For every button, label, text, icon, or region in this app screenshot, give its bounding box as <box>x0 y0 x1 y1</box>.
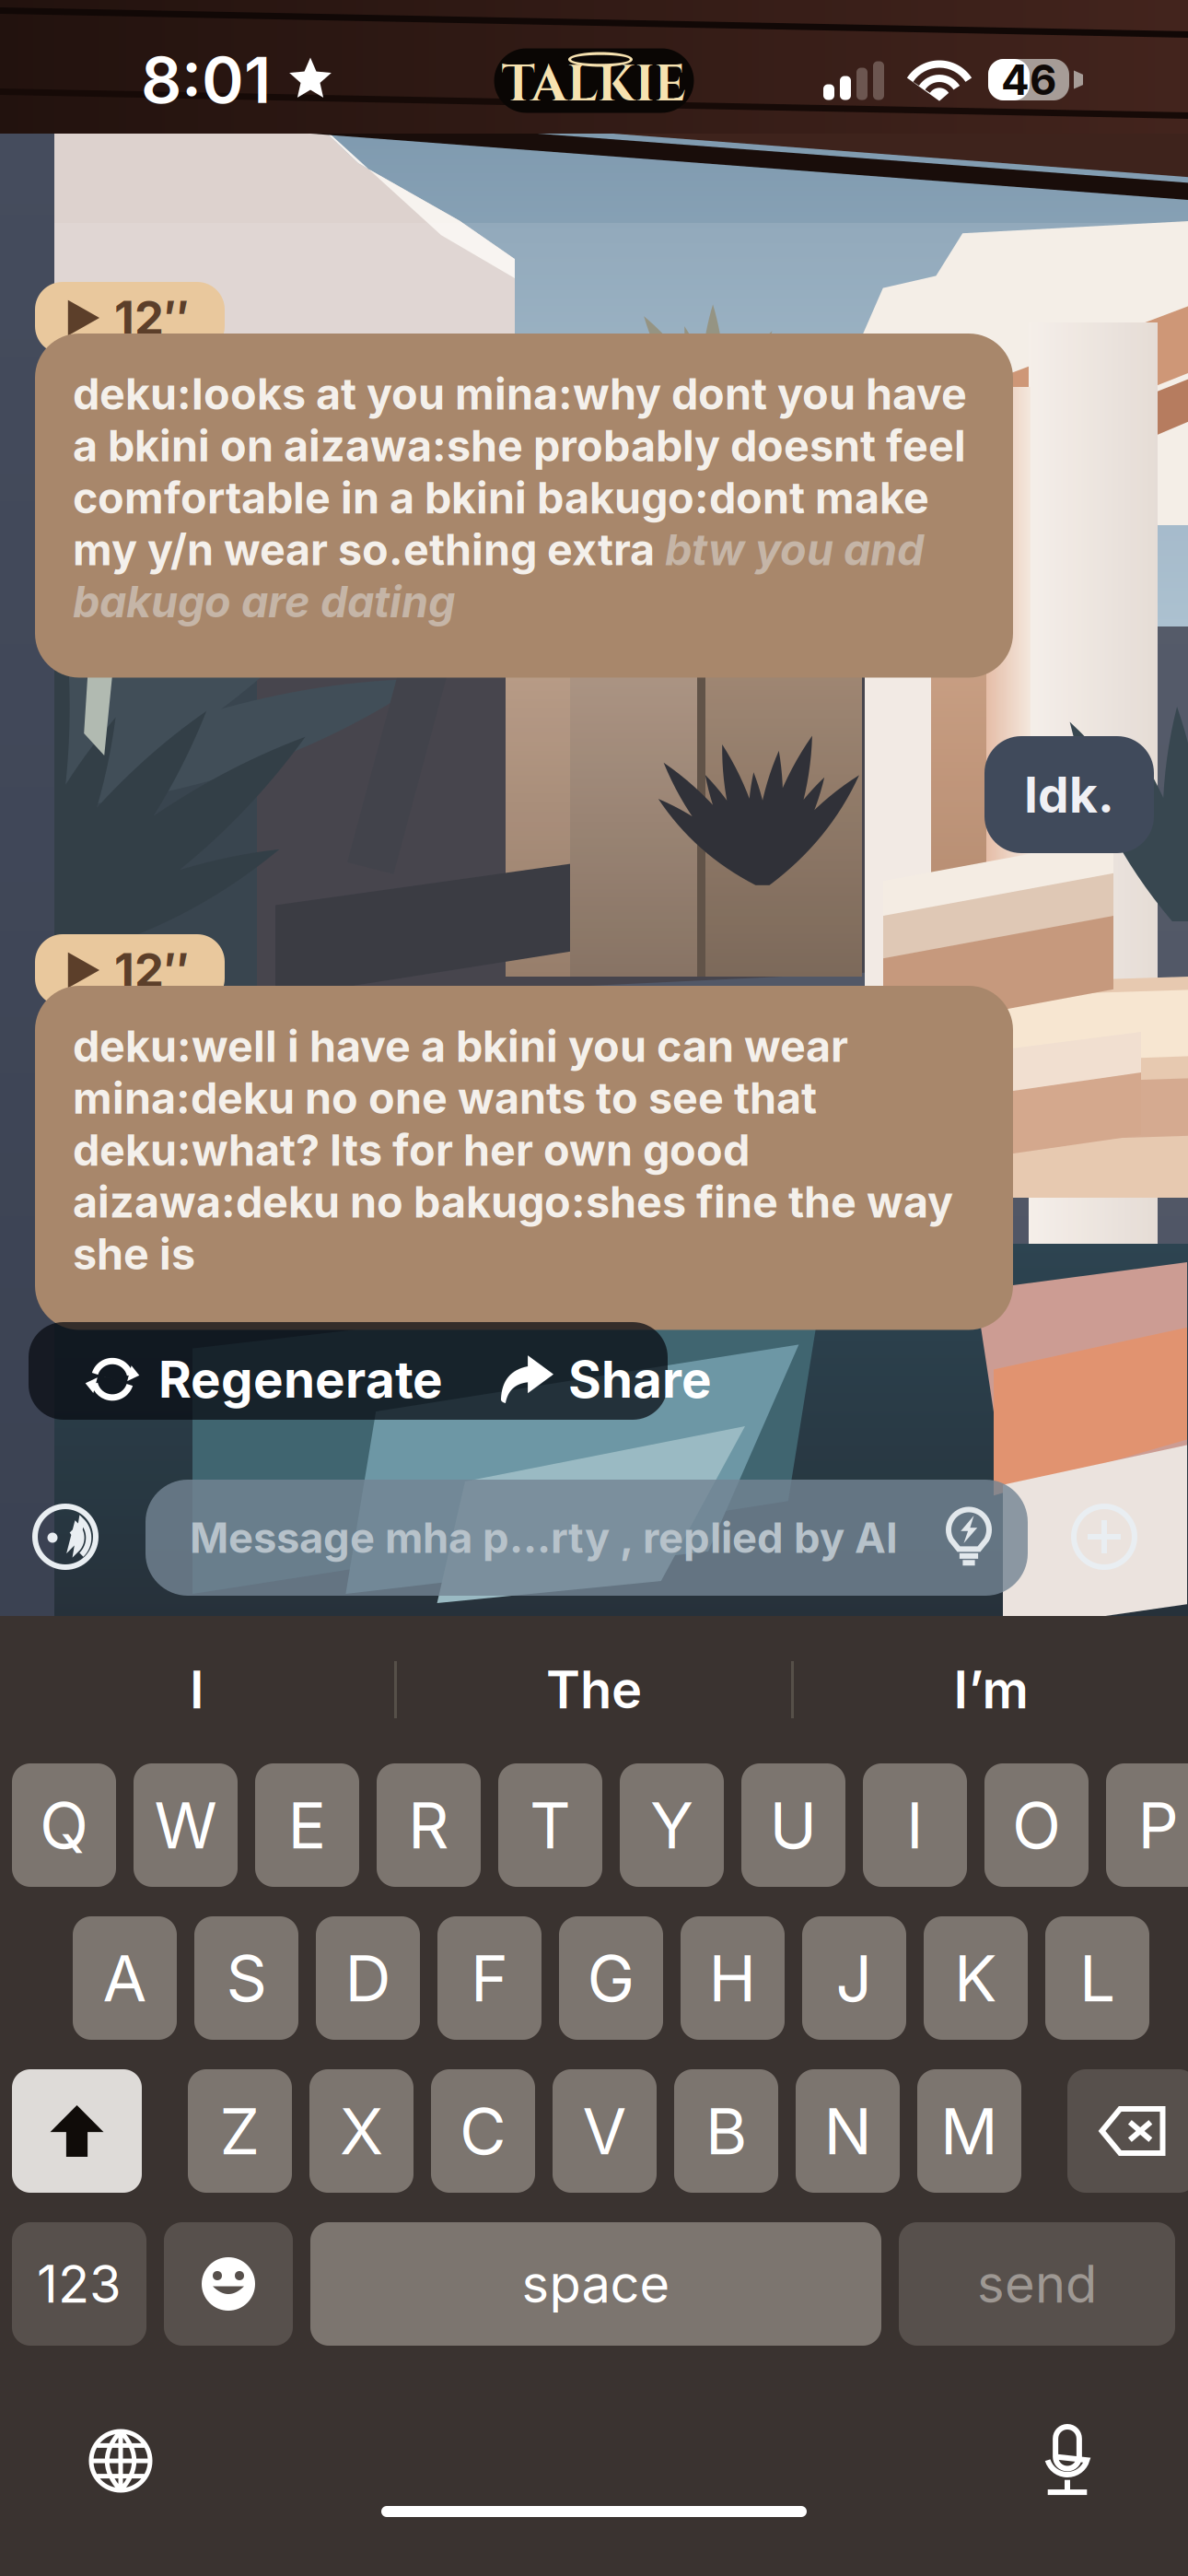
staticText: 12″ <box>114 290 190 346</box>
button[interactable]: B <box>674 2069 778 2193</box>
staticText: Share <box>568 1349 712 1410</box>
button[interactable]: N <box>796 2069 900 2193</box>
staticText: Q <box>40 1787 88 1864</box>
button[interactable]: Q <box>12 1763 116 1887</box>
button[interactable]: K <box>924 1916 1028 2040</box>
staticText: X <box>340 2092 383 2170</box>
staticText: space <box>522 2253 670 2315</box>
staticText: send <box>977 2253 1097 2315</box>
staticText: J <box>836 1939 873 2017</box>
button[interactable]: Share <box>496 1338 712 1421</box>
button[interactable]: M <box>917 2069 1021 2193</box>
staticText: F <box>471 1939 508 2017</box>
button[interactable]: Delete <box>1067 2069 1188 2193</box>
button[interactable]: G <box>559 1916 663 2040</box>
button[interactable]: P <box>1106 1763 1188 1887</box>
button[interactable]: F <box>437 1916 542 2040</box>
staticText: N <box>824 2092 872 2170</box>
button[interactable]: U <box>741 1763 845 1887</box>
staticText: L <box>1079 1939 1115 2017</box>
staticText: R <box>408 1787 449 1864</box>
button[interactable]: Suggest reply <box>930 1499 1007 1576</box>
staticText: M <box>940 2092 998 2170</box>
button[interactable]: I <box>863 1763 967 1887</box>
button[interactable]: X <box>309 2069 413 2193</box>
button[interactable]: E <box>255 1763 359 1887</box>
button[interactable]: L <box>1045 1916 1149 2040</box>
button[interactable]: Voice message <box>21 1493 110 1581</box>
staticText: Regenerate <box>158 1349 443 1410</box>
button[interactable]: 12″ <box>35 934 225 1006</box>
button[interactable]: Dictation <box>1017 2410 1118 2512</box>
button[interactable]: The <box>397 1616 791 1763</box>
button[interactable]: I’m <box>794 1616 1188 1763</box>
staticText: The <box>546 1658 642 1721</box>
staticText: 46 <box>1001 54 1056 105</box>
staticText: TALKIE <box>501 51 687 119</box>
button[interactable]: Z <box>188 2069 292 2193</box>
staticText: Y <box>650 1787 693 1864</box>
button[interactable]: 123 <box>12 2222 146 2346</box>
staticText: G <box>587 1939 635 2017</box>
staticText: S <box>226 1939 267 2017</box>
staticText: Idk. <box>1024 765 1114 824</box>
staticText: C <box>460 2092 507 2170</box>
button[interactable]: I <box>0 1616 394 1763</box>
staticText: I <box>906 1787 924 1864</box>
staticText: V <box>582 2092 627 2170</box>
staticText: deku:well i have a bkini you can wear mi… <box>73 1021 953 1279</box>
staticText: H <box>709 1939 757 2017</box>
staticText: 12″ <box>114 942 190 998</box>
staticText: 8:01 <box>141 41 271 118</box>
staticText: K <box>954 1939 997 2017</box>
staticText: deku:looks at you mina:why dont you have… <box>73 369 967 627</box>
button[interactable]: S <box>194 1916 298 2040</box>
button[interactable]: Emoji <box>164 2222 293 2346</box>
button[interactable]: W <box>134 1763 238 1887</box>
staticText: W <box>154 1787 217 1864</box>
staticText: B <box>705 2092 747 2170</box>
button[interactable]: Add attachment <box>1060 1493 1148 1581</box>
button[interactable]: Regenerate <box>85 1338 443 1421</box>
staticText: Z <box>220 2092 260 2170</box>
staticText: A <box>103 1939 147 2017</box>
staticText: I’m <box>954 1658 1028 1721</box>
staticText: D <box>345 1939 391 2017</box>
staticText: I <box>190 1658 204 1721</box>
staticText: P <box>1138 1787 1178 1864</box>
button[interactable]: 12″ <box>35 282 225 354</box>
staticText: T <box>530 1787 571 1864</box>
button[interactable]: Shift <box>12 2069 142 2193</box>
button[interactable]: H <box>681 1916 785 2040</box>
button[interactable]: send <box>899 2222 1175 2346</box>
staticText: Message mha p...rty , replied by AI <box>190 1512 898 1563</box>
button[interactable]: C <box>431 2069 535 2193</box>
staticText: 123 <box>37 2253 122 2315</box>
button[interactable]: J <box>802 1916 906 2040</box>
button[interactable]: Next keyboard <box>70 2410 171 2512</box>
staticText: U <box>769 1787 817 1864</box>
button[interactable]: V <box>553 2069 657 2193</box>
button[interactable]: R <box>377 1763 481 1887</box>
button[interactable]: A <box>73 1916 177 2040</box>
button[interactable]: Y <box>620 1763 724 1887</box>
button[interactable]: D <box>316 1916 420 2040</box>
staticText: E <box>288 1787 326 1864</box>
button[interactable]: T <box>498 1763 602 1887</box>
button[interactable]: space <box>310 2222 881 2346</box>
button[interactable]: O <box>984 1763 1089 1887</box>
staticText: O <box>1012 1787 1061 1864</box>
